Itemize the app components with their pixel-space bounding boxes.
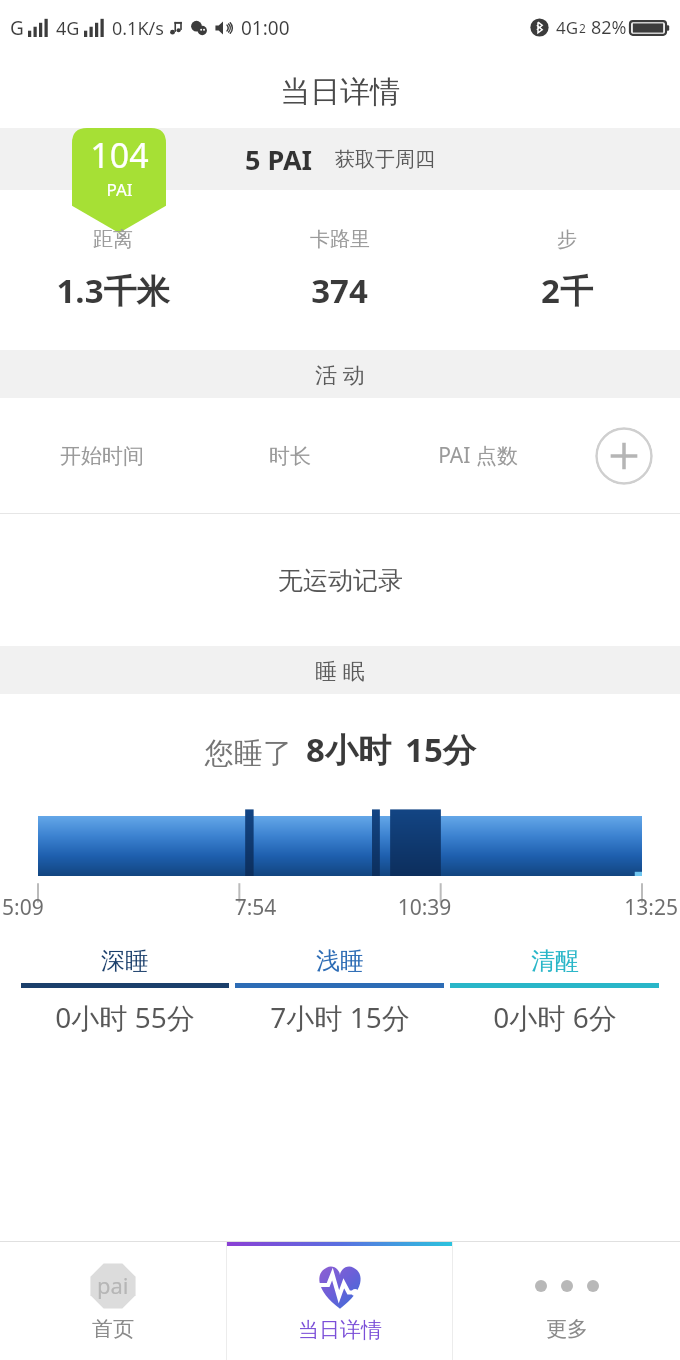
button[interactable]: 卡路里 xyxy=(226,227,453,313)
staticText: 2 xyxy=(579,20,586,36)
staticText: 卡路里 xyxy=(310,227,370,252)
staticText: 4G xyxy=(56,16,80,41)
staticText: 104 xyxy=(90,132,149,178)
staticText: 13:25 xyxy=(509,893,678,922)
staticText: 活 动 xyxy=(315,359,365,389)
staticText: 82% xyxy=(591,15,627,40)
staticText: 7:54 xyxy=(171,893,340,922)
staticText: 深睡 xyxy=(101,946,149,976)
staticText: PAI xyxy=(106,178,133,201)
staticText: 步 xyxy=(557,227,577,252)
staticText: 01:00 xyxy=(241,15,290,41)
staticText: 首页 xyxy=(92,1316,134,1342)
staticText: 0小时 6分 xyxy=(493,998,617,1036)
staticText: 获取于周四 xyxy=(335,147,435,172)
button[interactable]: 步 xyxy=(453,227,680,313)
staticText: 10:39 xyxy=(340,893,509,922)
button[interactable]: 当日详情 xyxy=(226,1242,453,1360)
staticText: 0.1K/s xyxy=(112,16,164,41)
staticText: G xyxy=(10,15,24,41)
staticText: 0小时 55分 xyxy=(55,998,195,1036)
staticText: 当日详情 xyxy=(280,73,400,111)
staticText: 374 xyxy=(311,268,368,313)
button[interactable]: 更多 xyxy=(453,1242,680,1360)
staticText: 无运动记录 xyxy=(278,565,403,596)
staticText: 2千 xyxy=(541,268,593,313)
staticText: 5 PAI xyxy=(245,141,313,178)
staticText: 当日详情 xyxy=(298,1317,382,1343)
staticText: 8小时 xyxy=(306,727,391,772)
button[interactable]: 距离 xyxy=(0,227,226,313)
staticText: pai xyxy=(97,1270,129,1300)
staticText: 时长 xyxy=(196,443,384,469)
staticText: 5:09 xyxy=(2,893,171,922)
staticText: 4G xyxy=(556,16,579,39)
button[interactable]: 添加活动 xyxy=(595,427,653,485)
staticText: 距离 xyxy=(93,227,133,252)
button[interactable]: 浅睡 xyxy=(232,946,447,1036)
staticText: 更多 xyxy=(546,1316,588,1342)
button[interactable]: 清醒 xyxy=(447,946,662,1036)
staticText: 浅睡 xyxy=(316,946,364,976)
staticText: 清醒 xyxy=(531,946,579,976)
staticText: 开始时间 xyxy=(8,443,196,469)
staticText: 15分 xyxy=(405,727,476,772)
staticText: 睡 眠 xyxy=(315,655,365,685)
staticText: 7小时 15分 xyxy=(270,998,410,1036)
staticText: PAI 点数 xyxy=(384,441,572,470)
staticText: 您睡了 xyxy=(205,735,292,772)
button[interactable]: 深睡 xyxy=(18,946,232,1036)
staticText: 1.3千米 xyxy=(56,268,170,313)
button[interactable]: 首页 xyxy=(0,1242,226,1360)
